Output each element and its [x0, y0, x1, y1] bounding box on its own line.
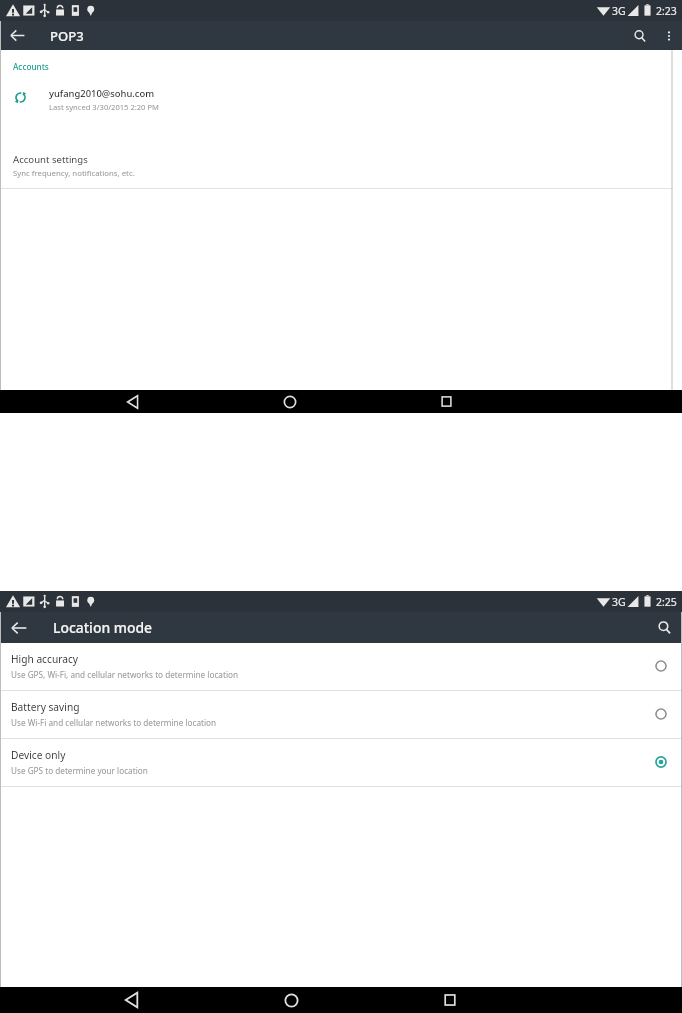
staticText: Sync frequency, notifications, etc. [13, 168, 135, 179]
button[interactable]: Home [270, 987, 312, 1013]
staticText: yufang2010@sohu.com [49, 87, 155, 100]
button[interactable]: yufang2010@sohu.com [0, 85, 682, 120]
button[interactable]: Home [271, 390, 308, 413]
button[interactable]: High accuracy [0, 643, 682, 690]
button[interactable]: More options [656, 21, 682, 50]
staticText: 3G [612, 595, 626, 609]
button[interactable]: Back [114, 390, 151, 413]
staticText: 2:25 [656, 595, 677, 609]
staticText: Last synced 3/30/2015 2:20 PM [49, 102, 159, 112]
button[interactable]: Search [647, 612, 682, 643]
button[interactable]: Device only [0, 739, 682, 786]
staticText: POP3 [50, 27, 84, 45]
staticText: 2:23 [656, 4, 677, 18]
button[interactable]: Navigate up [0, 612, 37, 643]
staticText: Account settings [13, 153, 88, 166]
staticText: High accuracy [11, 652, 78, 666]
button[interactable]: Battery saving [0, 691, 682, 738]
staticText: Device only [11, 748, 66, 762]
staticText: Battery saving [11, 700, 80, 714]
staticText: Use GPS, Wi-Fi, and cellular networks to… [11, 669, 239, 680]
staticText: 3G [612, 4, 626, 18]
button[interactable]: Back [111, 987, 153, 1013]
button[interactable]: Recents [429, 987, 471, 1013]
staticText: Location mode [53, 618, 153, 637]
staticText: Accounts [13, 61, 49, 72]
button[interactable]: Recents [428, 390, 465, 413]
staticText: Use GPS to determine your location [11, 765, 148, 776]
button[interactable]: Account settings [0, 151, 682, 188]
button[interactable]: Navigate up [0, 21, 35, 50]
button[interactable]: Search [624, 21, 656, 50]
staticText: Use Wi-Fi and cellular networks to deter… [11, 717, 217, 728]
